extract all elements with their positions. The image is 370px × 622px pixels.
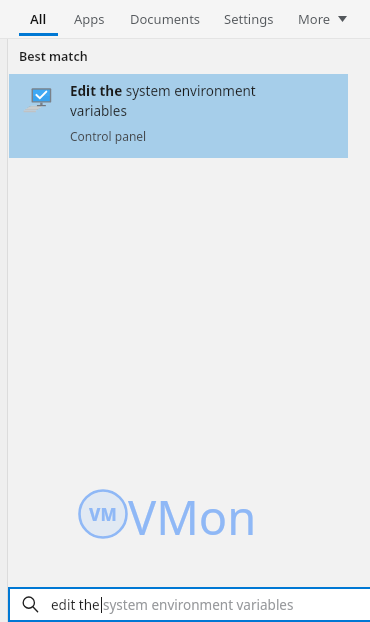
- staticText: Best match: [19, 48, 88, 65]
- button[interactable]: Documents: [124, 0, 206, 38]
- staticText: Edit the system environment variables: [70, 82, 275, 120]
- button[interactable]: More: [293, 0, 352, 38]
- staticText: Documents: [130, 10, 201, 28]
- staticText: edit the: [51, 596, 100, 614]
- staticText: Apps: [74, 10, 105, 28]
- staticText: VM: [89, 503, 117, 526]
- staticText: Control panel: [70, 128, 147, 144]
- button[interactable]: Apps: [68, 0, 111, 38]
- staticText: More: [298, 10, 331, 28]
- button[interactable]: edit the: [8, 587, 370, 622]
- button[interactable]: Settings: [217, 0, 281, 38]
- button[interactable]: Edit the system environment variables: [9, 74, 348, 158]
- staticText: All: [30, 10, 47, 28]
- staticText: system environment variables: [103, 596, 294, 614]
- staticText: VMon: [128, 485, 257, 549]
- button[interactable]: All: [19, 0, 58, 38]
- staticText: Settings: [224, 10, 274, 28]
